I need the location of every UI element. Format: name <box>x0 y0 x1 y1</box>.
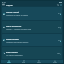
button[interactable]: W <box>2 7 62 20</box>
staticText: Tue <box>58 39 61 41</box>
button[interactable]: Profile <box>47 60 63 63</box>
button[interactable]: Open navigation menu <box>2 3 5 6</box>
staticText: Inbox <box>6 3 13 6</box>
button[interactable]: D <box>2 34 62 46</box>
button[interactable]: Chats <box>16 60 31 63</box>
staticText: D <box>3 39 5 41</box>
staticText: Thanks — sending the files now <box>6 28 32 30</box>
staticText: Maya Thompson <box>6 25 22 28</box>
staticText: 8:40 <box>58 26 61 28</box>
staticText: Build passed <box>6 51 18 54</box>
staticText: Profile <box>53 62 57 63</box>
button[interactable]: Search <box>57 4 59 6</box>
button[interactable]: Search <box>31 60 47 63</box>
staticText: M <box>3 26 5 28</box>
staticText: Summary is ready to review <box>6 14 28 16</box>
staticText: Home <box>7 62 11 63</box>
staticText: W <box>3 13 5 15</box>
staticText: 9:41 <box>2 1 6 3</box>
button[interactable]: B <box>2 47 62 59</box>
staticText: Updated the spacing tokens <box>6 41 29 43</box>
staticText: Search <box>37 62 41 63</box>
staticText: Chats <box>22 62 26 63</box>
staticText: Mon <box>57 52 61 54</box>
staticText: Weekly report <box>6 11 19 14</box>
staticText: B <box>4 52 5 54</box>
staticText: Design review <box>6 38 19 41</box>
staticText: All checks completed <box>6 54 23 56</box>
staticText: 9:12 <box>58 12 61 14</box>
button[interactable]: Home <box>1 60 16 63</box>
button[interactable]: M <box>2 21 62 33</box>
